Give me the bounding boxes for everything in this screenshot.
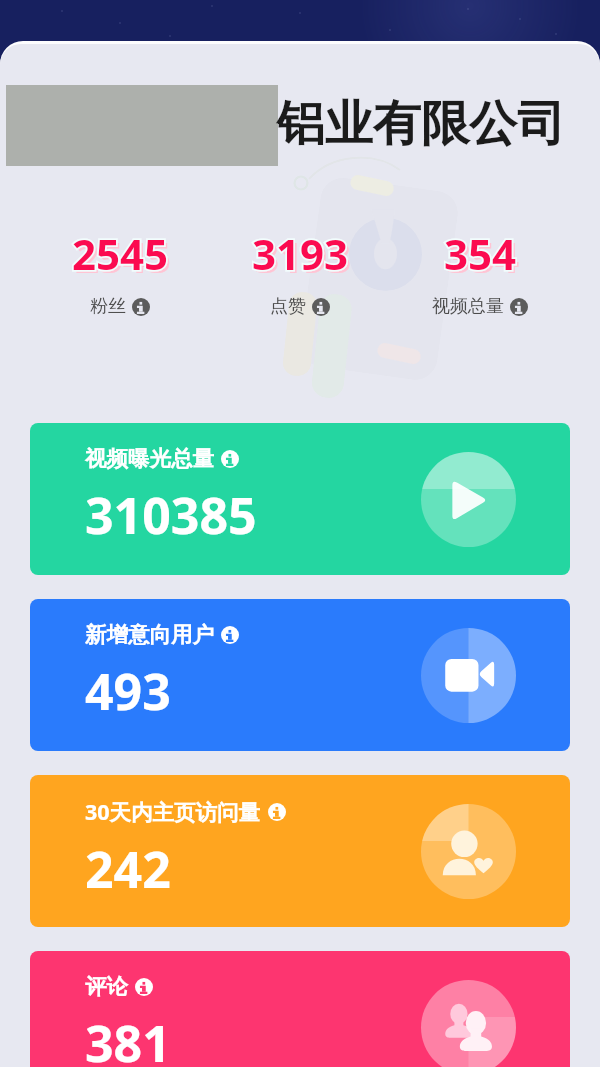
staticText: 3193 — [255, 228, 352, 285]
button[interactable]: 评论 — [30, 951, 570, 1067]
staticText: 30天内主页访问量 — [85, 797, 261, 826]
staticText: 评论 — [85, 973, 128, 1000]
staticText: 2545 — [75, 228, 172, 285]
staticText: 粉丝 — [90, 295, 126, 318]
other: Play — [421, 452, 516, 547]
button[interactable]: 3193 — [210, 225, 390, 318]
button[interactable]: 354 — [390, 225, 570, 318]
staticText: 493 — [85, 657, 171, 725]
other: Visitors — [421, 804, 516, 899]
staticText: 381 — [85, 1009, 171, 1067]
staticText: 242 — [85, 835, 171, 903]
staticText: 点赞 — [270, 295, 306, 318]
staticText: 310385 — [85, 481, 257, 549]
staticText: 新增意向用户 — [85, 621, 214, 648]
staticText: 354 — [447, 228, 520, 285]
button[interactable]: 2545 — [30, 225, 210, 318]
other: Comments — [421, 980, 516, 1067]
button[interactable]: 新增意向用户 — [30, 599, 570, 751]
staticText: 354 — [444, 225, 517, 282]
staticText: 3193 — [252, 225, 349, 282]
staticText: 铝业有限公司 — [277, 94, 565, 154]
staticText: 354 — [444, 225, 517, 282]
staticText: 2545 — [72, 225, 169, 282]
button[interactable]: 30天内主页访问量 — [30, 775, 570, 927]
button[interactable]: 视频曝光总量 — [30, 423, 570, 575]
staticText: 视频总量 — [432, 295, 504, 318]
other: Video — [421, 628, 516, 723]
staticText: 2545 — [72, 225, 169, 282]
staticText: 视频曝光总量 — [85, 445, 214, 472]
staticText: 3193 — [252, 225, 349, 282]
